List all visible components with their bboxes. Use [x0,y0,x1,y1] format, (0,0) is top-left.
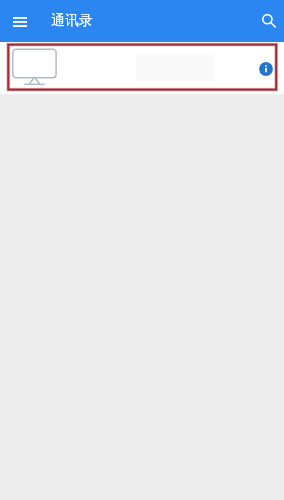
button[interactable]: Menu [6,8,33,35]
staticText: 通讯录 [51,12,93,30]
button[interactable]: Search [255,7,283,35]
button[interactable]: Info [254,56,278,80]
button[interactable]: Info [0,42,284,94]
